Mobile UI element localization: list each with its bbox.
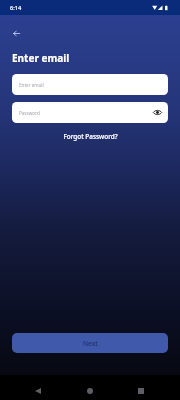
staticText: 6:14 bbox=[10, 4, 22, 12]
button[interactable]: Show password bbox=[151, 106, 164, 119]
staticText: Enter email bbox=[12, 51, 70, 65]
button[interactable]: Home bbox=[82, 383, 98, 399]
staticText: Next bbox=[83, 339, 98, 348]
button[interactable]: Back bbox=[6, 23, 26, 43]
staticText: Enter email bbox=[19, 82, 44, 88]
button[interactable]: Enter email bbox=[12, 74, 168, 95]
staticText: Password bbox=[19, 110, 40, 116]
button[interactable]: Next bbox=[12, 333, 168, 353]
button[interactable]: Recent apps bbox=[133, 383, 149, 399]
button[interactable]: Password bbox=[12, 102, 168, 123]
button[interactable]: Forgot Password? bbox=[0, 130, 180, 142]
button[interactable]: Back bbox=[30, 383, 46, 399]
staticText: Forgot Password? bbox=[63, 132, 118, 141]
